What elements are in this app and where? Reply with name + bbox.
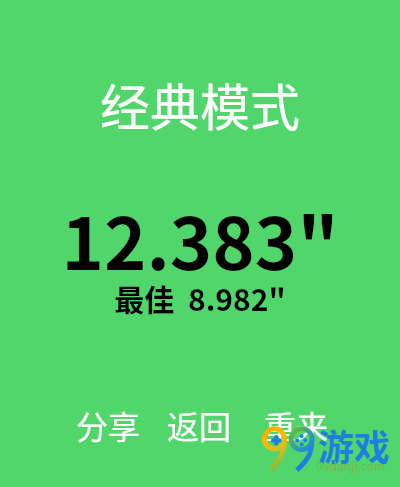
staticText: 12.383" (61, 186, 339, 290)
staticText: 经典模式 (100, 68, 300, 140)
button[interactable]: 分享 (76, 402, 141, 448)
staticText: 分享 (76, 402, 141, 448)
staticText: 返回 (167, 402, 232, 448)
button[interactable]: 返回 (167, 402, 232, 448)
button[interactable]: 重来 (264, 402, 329, 448)
staticText: 游戏 (318, 419, 391, 471)
staticText: 99danji.com (316, 457, 385, 474)
staticText: 最佳 8.982" (114, 276, 286, 319)
staticText: 重来 (264, 402, 329, 448)
